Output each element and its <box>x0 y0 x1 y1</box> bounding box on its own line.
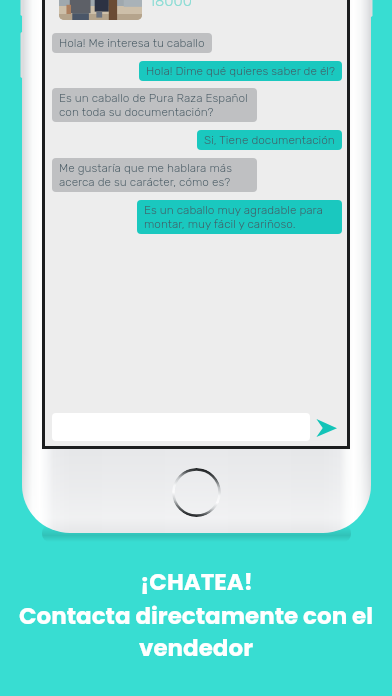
button[interactable]: Es un caballo de Pura Raza Español con t… <box>52 88 257 122</box>
staticText: Hola! Me interesa tu caballo <box>59 36 205 50</box>
button[interactable]: Me gustaría que me hablara más acerca de… <box>52 158 257 192</box>
button[interactable]: Hola! Dime qué quieres saber de él? <box>139 61 342 81</box>
button[interactable]: Si, Tiene documentación <box>197 130 342 150</box>
button[interactable]: Send <box>308 412 344 443</box>
button[interactable]: Hola! Me interesa tu caballo <box>52 33 212 53</box>
staticText: Si, Tiene documentación <box>204 133 335 147</box>
staticText: ¡CHATEA! <box>140 566 253 598</box>
staticText: Hola! Dime qué quieres saber de él? <box>146 64 335 78</box>
staticText: Me gustaría que me hablara más acerca de… <box>59 161 232 189</box>
button[interactable]: Es un caballo muy agradable para montar,… <box>137 200 342 234</box>
staticText: Contacta directamente con el vendedor <box>11 600 381 665</box>
button[interactable]: Home <box>172 468 221 517</box>
staticText: Es un caballo muy agradable para montar,… <box>144 203 323 231</box>
staticText: 18000 <box>149 0 192 10</box>
staticText: Es un caballo de Pura Raza Español con t… <box>59 91 248 119</box>
